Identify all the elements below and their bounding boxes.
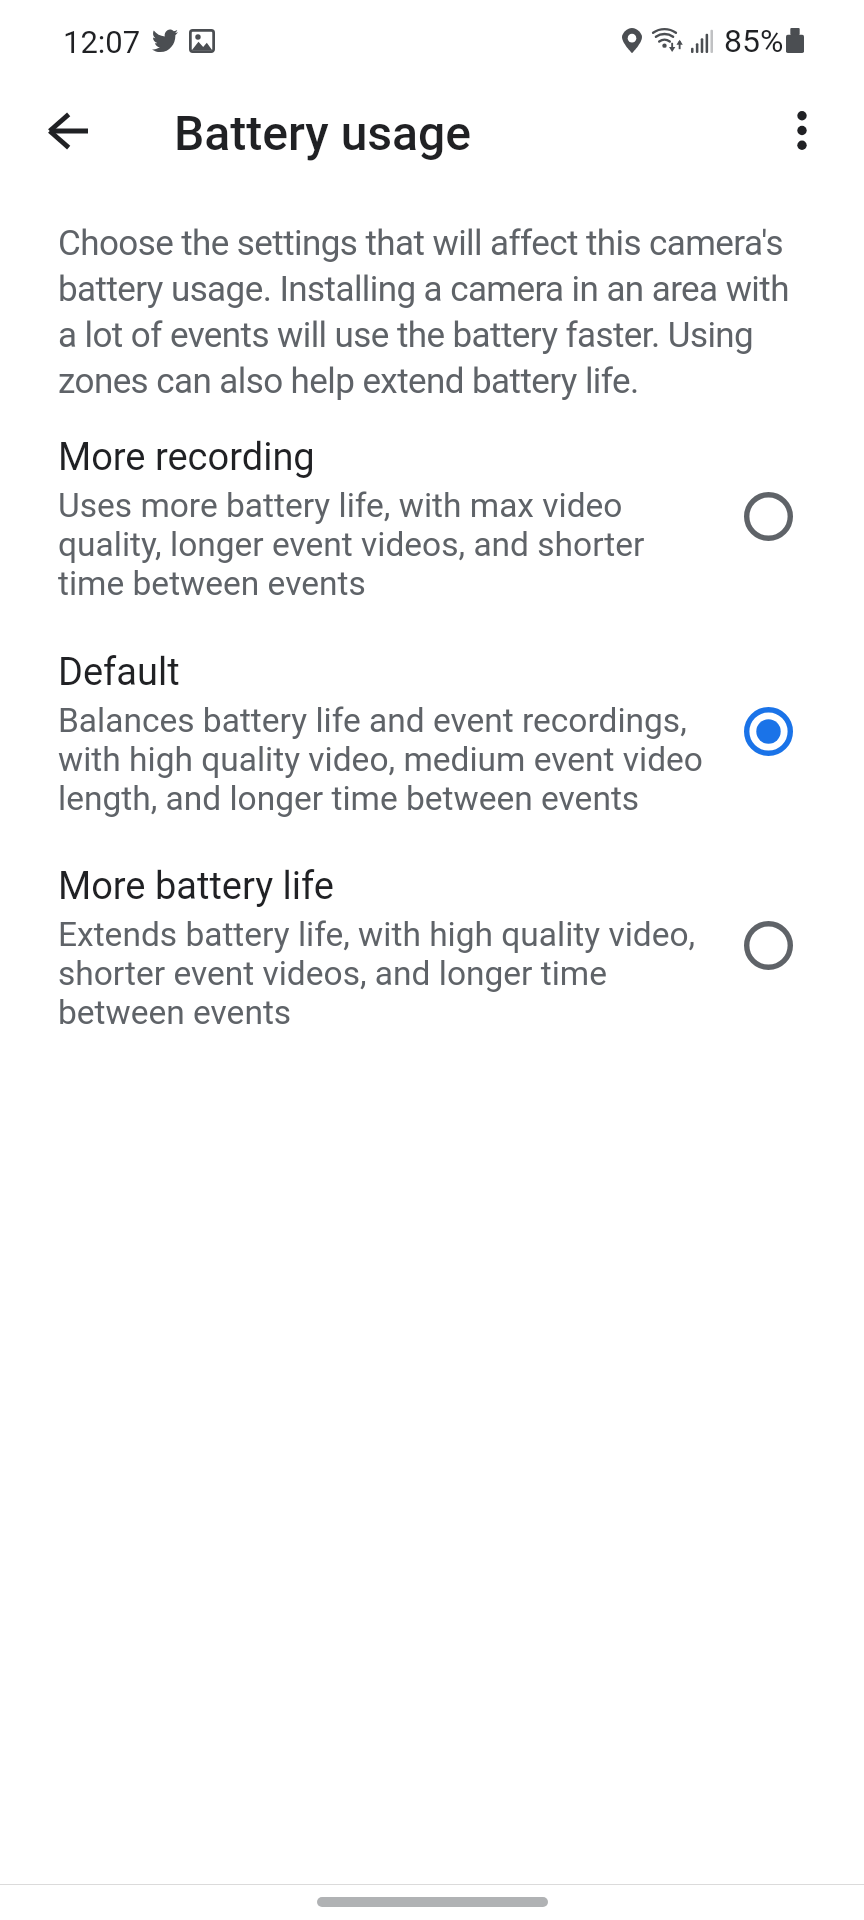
staticText: Battery usage [174, 106, 472, 162]
button[interactable]: More battery life [0, 861, 864, 1057]
staticText: More battery life [58, 863, 334, 909]
staticText: More recording [58, 434, 315, 480]
button[interactable]: Navigate up [26, 89, 109, 172]
staticText: Balances battery life and event recordin… [58, 701, 708, 818]
staticText: Choose the settings that will affect thi… [58, 219, 798, 403]
staticText: Uses more battery life, with max video q… [58, 486, 708, 603]
staticText: Default [58, 649, 180, 695]
staticText: 12:07 [63, 24, 141, 60]
button[interactable]: More recording [0, 432, 864, 628]
other: Home [317, 1897, 548, 1907]
button[interactable]: Default [0, 647, 864, 843]
button[interactable]: More options [760, 89, 843, 172]
staticText: 85% [724, 23, 784, 59]
staticText: Extends battery life, with high quality … [58, 915, 708, 1032]
